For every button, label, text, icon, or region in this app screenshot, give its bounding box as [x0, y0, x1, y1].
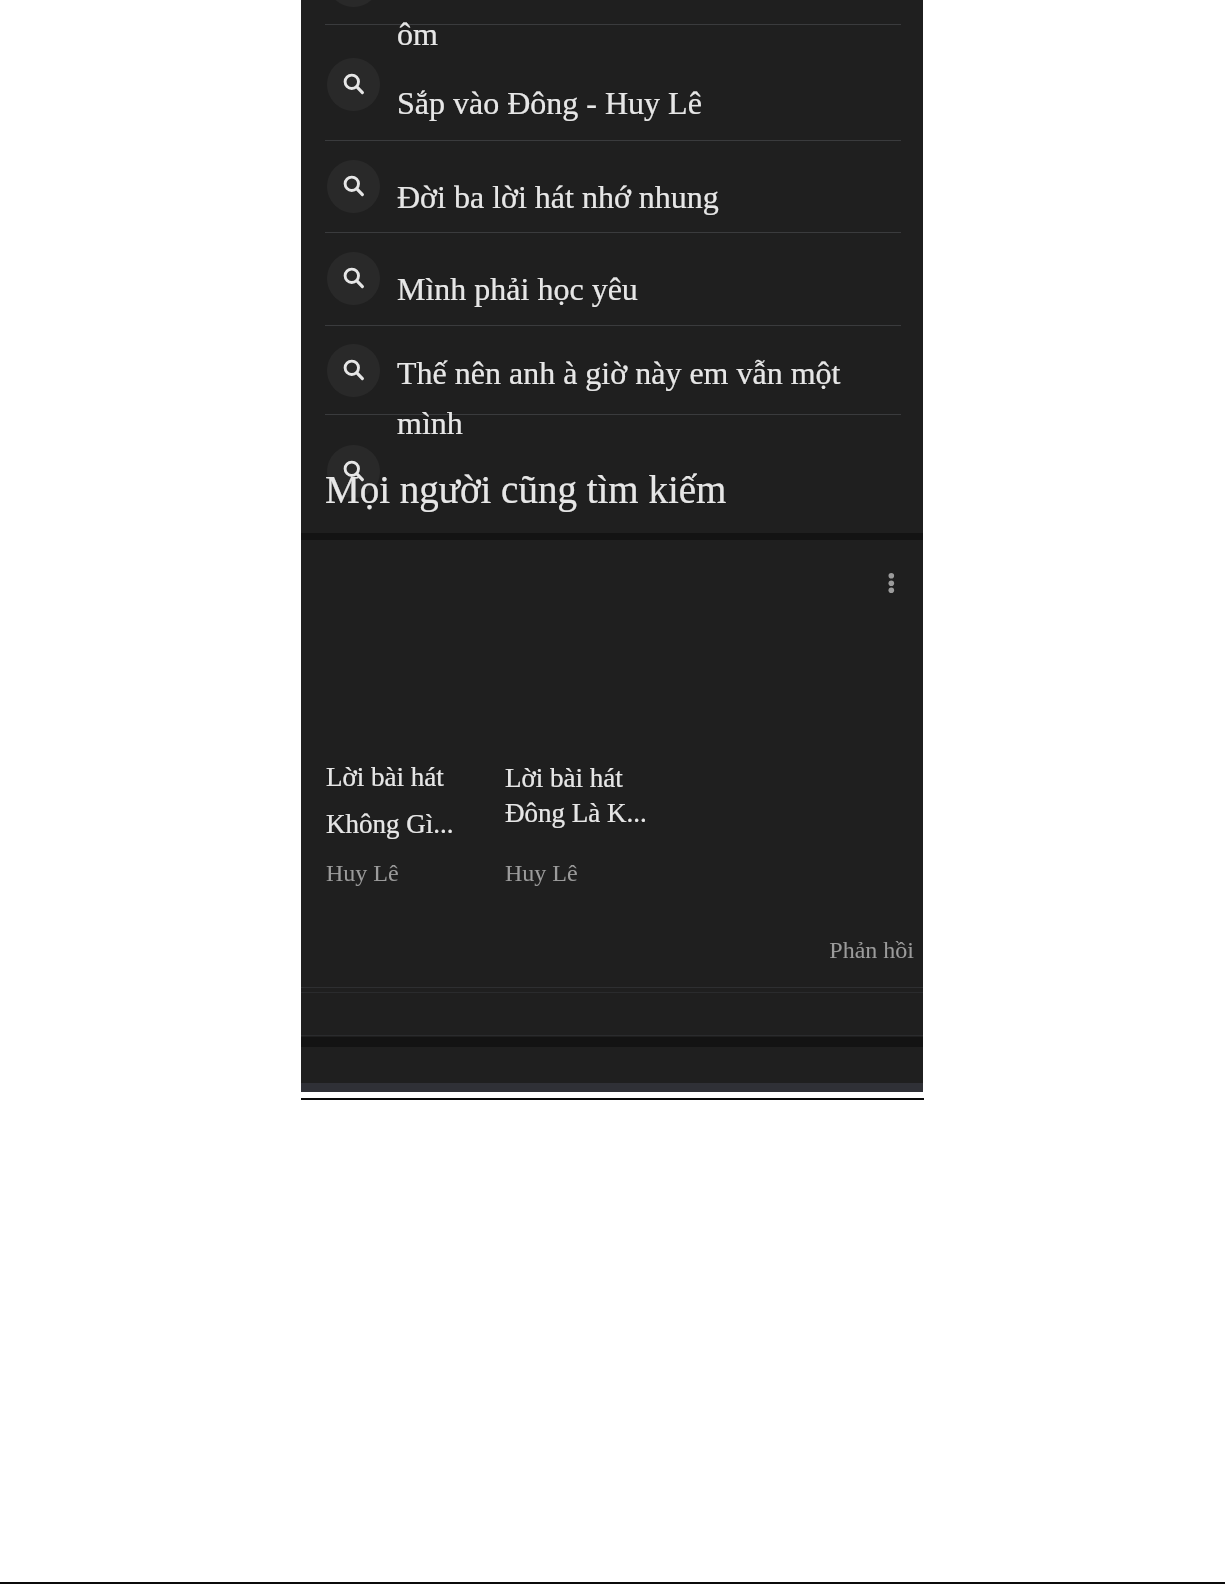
staticText: Huy Lê — [505, 860, 578, 887]
staticText: Phản hồi — [301, 937, 914, 964]
button[interactable]: Lời bài hát Không Gì... Huy Lê — [315, 560, 485, 890]
button[interactable]: Đời ba lời hát nhớ nhung — [301, 140, 923, 232]
button[interactable]: More options — [875, 566, 909, 600]
staticText: Lời bài hát — [505, 763, 623, 793]
staticText: Đông Là K... — [505, 798, 647, 828]
staticText: ôm — [397, 16, 438, 51]
staticText: Mình phải học yêu — [397, 271, 638, 306]
staticText: Thế nên anh à giờ này em vẫn một — [397, 355, 841, 390]
staticText: Lời bài hát — [326, 762, 444, 792]
button[interactable]: Lời bài hát Đông Là K... Huy Lê — [495, 560, 665, 890]
button[interactable]: Search — [327, 252, 380, 305]
button[interactable]: Search — [327, 58, 380, 111]
button[interactable]: Phản hồi — [301, 937, 923, 964]
button[interactable]: Search — [327, 160, 380, 213]
button[interactable]: Thế nên anh à giờ này em vẫn một mình — [301, 325, 923, 414]
staticText: Không Gì... — [326, 809, 454, 839]
button[interactable]: Mọi người cũng tìm kiếm — [301, 414, 923, 533]
staticText: Sắp vào Đông - Huy Lê — [397, 85, 702, 120]
staticText: Đời ba lời hát nhớ nhung — [397, 179, 719, 214]
staticText: Mọi người cũng tìm kiếm — [325, 468, 727, 511]
button[interactable]: Mình phải học yêu — [301, 232, 923, 325]
staticText: Huy Lê — [326, 860, 399, 887]
button[interactable]: Search — [327, 445, 380, 498]
button[interactable]: Sắp vào Đông - Huy Lê — [301, 24, 923, 140]
button[interactable]: Search — [327, 344, 380, 397]
button[interactable]: Search — [327, 0, 380, 7]
staticText: mình — [397, 405, 463, 440]
